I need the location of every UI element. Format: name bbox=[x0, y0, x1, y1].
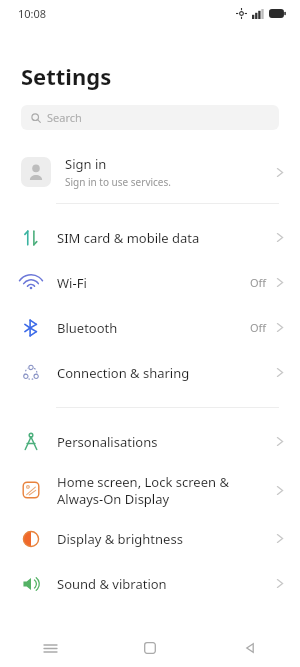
button[interactable]: Wi-Fi bbox=[0, 260, 300, 305]
staticText: Connection & sharing bbox=[57, 364, 276, 382]
button[interactable]: Back bbox=[200, 629, 300, 667]
staticText: Home screen, Lock screen & Always-On Dis… bbox=[57, 473, 276, 508]
staticText: Bluetooth bbox=[57, 319, 250, 337]
button[interactable]: Search bbox=[21, 105, 279, 130]
staticText: Sign in to use services. bbox=[65, 175, 171, 189]
staticText: 10:08 bbox=[18, 6, 47, 21]
button[interactable]: Display & brightness bbox=[0, 516, 300, 561]
button[interactable]: Personalisations bbox=[0, 419, 300, 464]
staticText: Display & brightness bbox=[57, 530, 276, 548]
staticText: Settings bbox=[21, 61, 112, 91]
button[interactable]: Sign in bbox=[0, 146, 300, 198]
staticText: Personalisations bbox=[57, 433, 276, 451]
button[interactable]: Bluetooth bbox=[0, 305, 300, 350]
staticText: Off bbox=[250, 275, 267, 290]
staticText: SIM card & mobile data bbox=[57, 229, 276, 247]
button[interactable]: Recents bbox=[0, 629, 100, 667]
button[interactable]: SIM card & mobile data bbox=[0, 215, 300, 260]
button[interactable]: Home screen, Lock screen & Always-On Dis… bbox=[0, 464, 300, 516]
button[interactable]: Connection & sharing bbox=[0, 350, 300, 395]
staticText: Wi-Fi bbox=[57, 274, 250, 292]
button[interactable]: Sound & vibration bbox=[0, 561, 300, 606]
staticText: Sound & vibration bbox=[57, 575, 276, 593]
staticText: Sign in bbox=[65, 155, 107, 173]
staticText: Off bbox=[250, 320, 267, 335]
button[interactable]: Home bbox=[100, 629, 200, 667]
staticText: Search bbox=[47, 110, 82, 125]
